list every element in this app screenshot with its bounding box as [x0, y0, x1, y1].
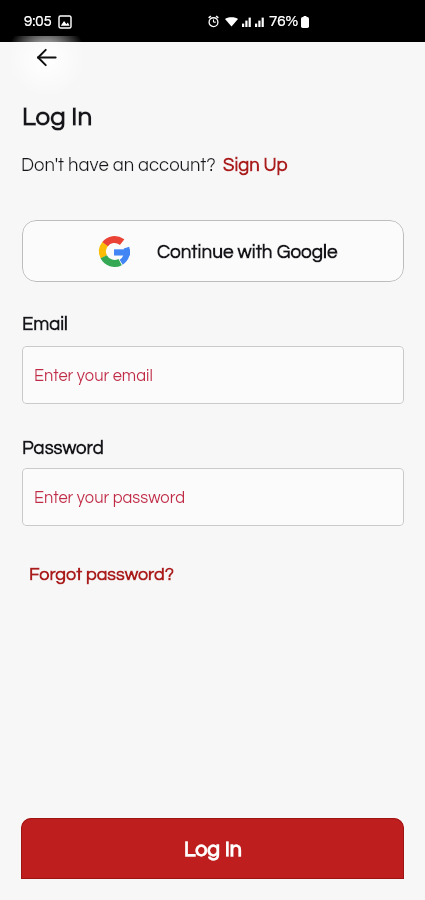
staticText: Don't have an account? — [21, 156, 216, 175]
staticText: Continue with Google — [157, 242, 338, 262]
button[interactable]: Continue with Google — [22, 220, 404, 282]
staticText: Password — [22, 439, 104, 458]
button[interactable]: Enter your password — [22, 468, 404, 526]
button[interactable]: Sign Up — [223, 156, 288, 175]
staticText: Sign Up — [223, 156, 288, 175]
staticText: 76% — [269, 14, 299, 29]
staticText: Log In — [22, 104, 93, 131]
staticText: Forgot password? — [29, 565, 174, 584]
staticText: Email — [22, 315, 68, 334]
button[interactable]: Enter your email — [22, 346, 404, 404]
staticText: Enter your password — [34, 489, 185, 506]
staticText: Enter your email — [34, 367, 153, 384]
staticText: Log In — [184, 838, 242, 860]
staticText: 9:05 — [24, 14, 52, 29]
button[interactable]: Log In — [21, 818, 404, 879]
button[interactable]: Back — [31, 42, 61, 72]
button[interactable]: Forgot password? — [29, 565, 174, 584]
